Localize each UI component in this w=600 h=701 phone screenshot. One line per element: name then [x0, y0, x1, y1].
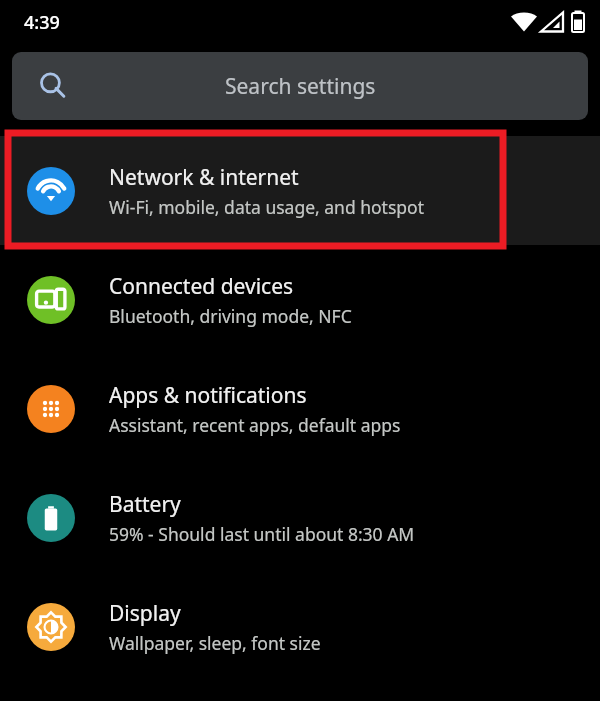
staticText: 59% - Should last until about 8:30 AM	[109, 522, 415, 546]
button[interactable]: Network & internet	[0, 136, 600, 245]
staticText: Wi-Fi, mobile, data usage, and hotspot	[109, 195, 424, 219]
other: Search	[37, 70, 69, 102]
staticText: 4:39	[24, 10, 60, 35]
button[interactable]: Connected devices	[0, 245, 600, 354]
staticText: Network & internet	[109, 163, 299, 192]
staticText: Connected devices	[109, 272, 294, 301]
staticText: Apps & notifications	[109, 381, 307, 410]
staticText: Display	[109, 599, 181, 628]
button[interactable]: Display	[0, 572, 600, 681]
staticText: Search settings	[225, 72, 376, 101]
staticText: Assistant, recent apps, default apps	[109, 413, 401, 437]
button[interactable]: Search	[12, 52, 588, 120]
staticText: Bluetooth, driving mode, NFC	[109, 304, 352, 328]
staticText: Wallpaper, sleep, font size	[109, 631, 321, 655]
other: Status icons	[502, 10, 586, 34]
staticText: Battery	[109, 490, 181, 519]
button[interactable]: Battery	[0, 463, 600, 572]
button[interactable]: Apps & notifications	[0, 354, 600, 463]
